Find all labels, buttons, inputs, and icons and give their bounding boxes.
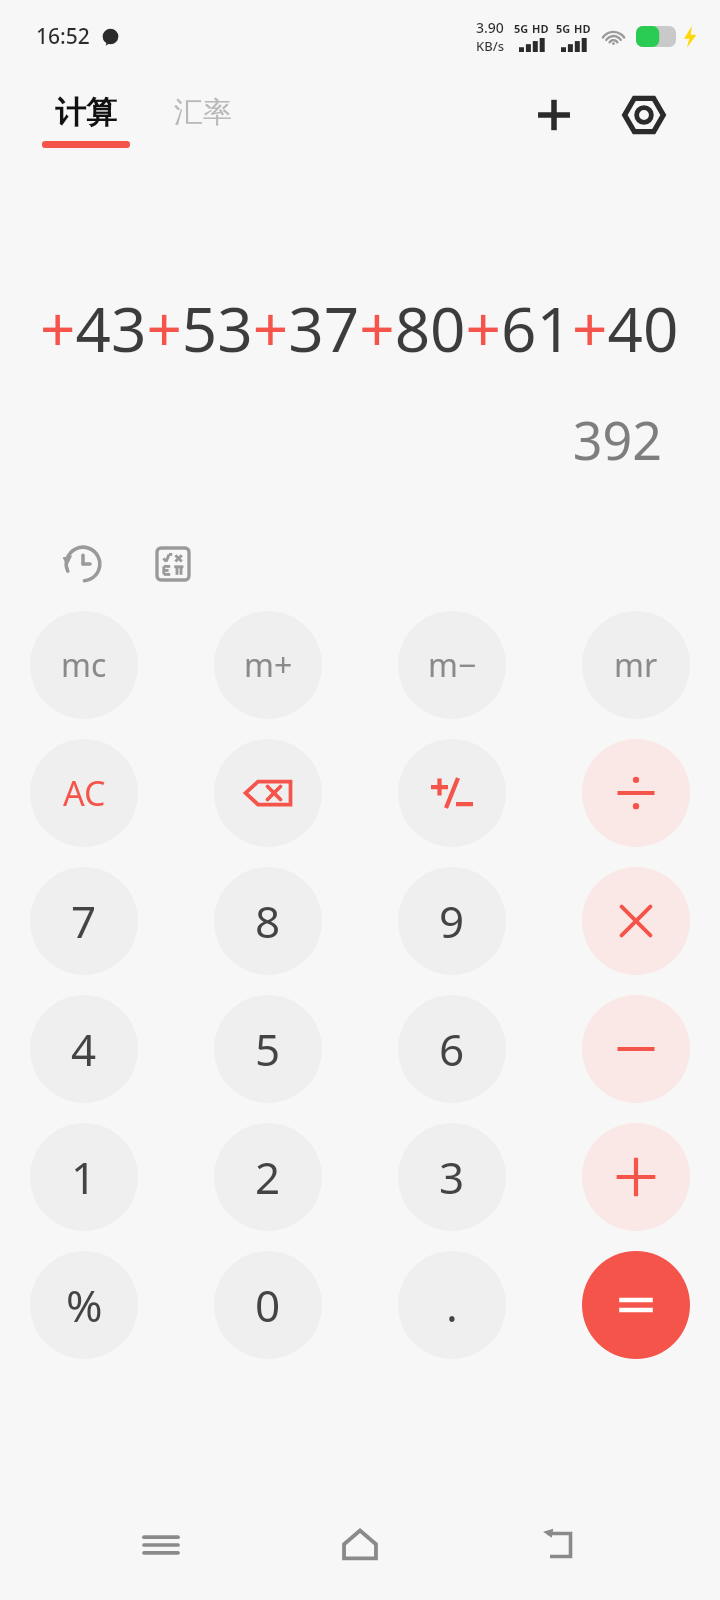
staticText: 计算 — [55, 93, 117, 132]
staticText: 3.90 — [476, 18, 504, 37]
button[interactable]: Multiply — [582, 867, 690, 975]
button[interactable]: History — [56, 537, 110, 591]
staticText: 5G — [556, 21, 571, 36]
button[interactable]: Unit converter — [526, 87, 582, 143]
staticText: 4 — [71, 1019, 97, 1079]
staticText: m− — [428, 643, 477, 687]
staticText: AC — [63, 770, 106, 816]
button[interactable]: Plus minus — [398, 739, 506, 847]
staticText: 16:52 — [36, 22, 90, 51]
staticText: 392 — [0, 404, 662, 475]
button[interactable]: Backspace — [214, 739, 322, 847]
staticText: . — [446, 1275, 458, 1335]
staticText: 6 — [439, 1019, 465, 1079]
button[interactable]: % — [30, 1251, 138, 1359]
staticText: 0 — [255, 1275, 281, 1335]
button[interactable]: mc — [30, 611, 138, 719]
button[interactable]: Home — [322, 1507, 398, 1583]
button[interactable]: 7 — [30, 867, 138, 975]
staticText: m+ — [244, 643, 293, 687]
staticText: 9 — [439, 891, 465, 951]
button[interactable]: Back — [521, 1507, 597, 1583]
button[interactable]: Add — [582, 1123, 690, 1231]
button[interactable]: 6 — [398, 995, 506, 1103]
button[interactable]: 8 — [214, 867, 322, 975]
button[interactable]: mr — [582, 611, 690, 719]
button[interactable]: 1 — [30, 1123, 138, 1231]
staticText: 7 — [71, 891, 97, 951]
button[interactable]: AC — [30, 739, 138, 847]
staticText: 5 — [255, 1019, 281, 1079]
staticText: 汇率 — [174, 94, 232, 131]
staticText: 8 — [255, 891, 281, 951]
button[interactable]: 4 — [30, 995, 138, 1103]
staticText: % — [66, 1275, 103, 1335]
button[interactable]: Divide — [582, 739, 690, 847]
staticText: 1 — [71, 1147, 97, 1207]
button[interactable]: 3 — [398, 1123, 506, 1231]
staticText: 5G — [514, 21, 529, 36]
staticText: HD — [574, 21, 591, 36]
button[interactable]: 9 — [398, 867, 506, 975]
button[interactable]: Subtract — [582, 995, 690, 1103]
staticText: 2 — [255, 1147, 281, 1207]
staticText: KB/s — [476, 37, 505, 55]
staticText: HD — [532, 21, 549, 36]
button[interactable]: 2 — [214, 1123, 322, 1231]
button[interactable]: 5 — [214, 995, 322, 1103]
button[interactable]: 计算 — [42, 93, 130, 148]
button[interactable]: 0 — [214, 1251, 322, 1359]
button[interactable]: Scientific mode — [146, 537, 200, 591]
button[interactable]: . — [398, 1251, 506, 1359]
staticText: 3 — [439, 1147, 465, 1207]
button[interactable]: Equals — [582, 1251, 690, 1359]
button[interactable]: 汇率 — [174, 94, 232, 147]
staticText: mr — [614, 643, 658, 687]
button[interactable]: m+ — [214, 611, 322, 719]
staticText: +43+53+37+80+61+40 — [40, 286, 679, 370]
staticText: mc — [61, 643, 107, 687]
button[interactable]: Settings — [616, 87, 672, 143]
button[interactable]: Recents — [123, 1507, 199, 1583]
button[interactable]: m− — [398, 611, 506, 719]
